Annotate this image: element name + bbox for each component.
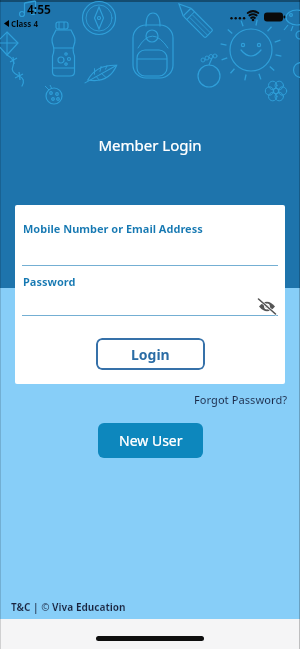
staticText: 4:55 bbox=[27, 1, 51, 17]
staticText: New User bbox=[119, 431, 183, 450]
staticText: Class 4 bbox=[11, 18, 38, 29]
staticText: T&C | © Viva Education bbox=[11, 600, 126, 614]
staticText: Member Login bbox=[0, 135, 300, 155]
staticText: Login bbox=[131, 345, 170, 364]
staticText: Password bbox=[23, 274, 76, 289]
button[interactable]: Forgot Password? bbox=[148, 391, 288, 407]
button[interactable]: New User bbox=[98, 423, 203, 458]
staticText: Mobile Number or Email Address bbox=[23, 221, 203, 236]
button[interactable]: Login bbox=[96, 338, 205, 370]
staticText: Forgot Password? bbox=[194, 392, 288, 407]
